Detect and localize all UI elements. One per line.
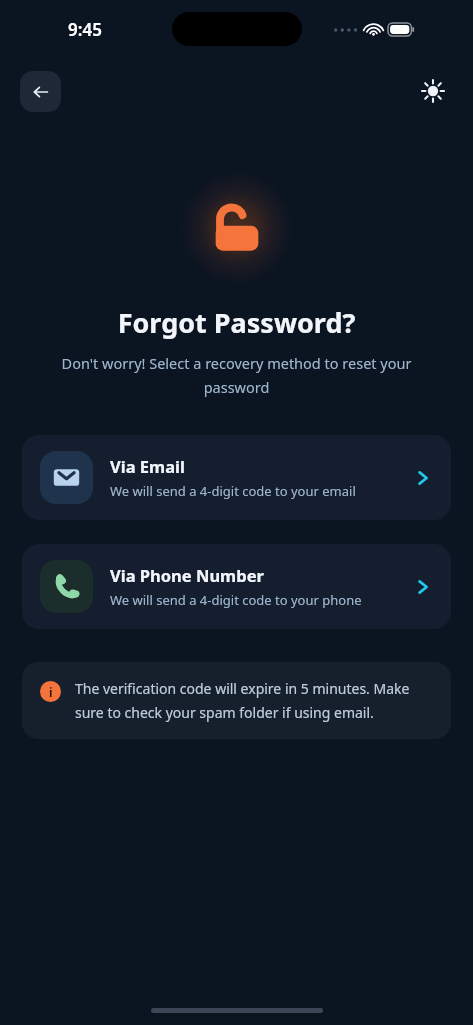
staticText: Via Phone Number — [110, 564, 264, 586]
staticText: The verification code will expire in 5 m… — [75, 679, 431, 722]
button[interactable]: Via Phone Number — [22, 544, 451, 629]
staticText: 9:45 — [68, 18, 102, 41]
button[interactable]: Back — [20, 71, 61, 112]
button[interactable]: Via Email — [22, 435, 451, 520]
staticText: We will send a 4-digit code to your phon… — [110, 591, 362, 609]
button[interactable]: Brightness — [413, 71, 453, 111]
staticText: i — [49, 684, 53, 700]
staticText: Via Email — [110, 455, 185, 477]
staticText: Don't worry! Select a recovery method to… — [38, 353, 435, 397]
button[interactable]: i — [22, 662, 451, 739]
staticText: Forgot Password? — [0, 304, 473, 341]
staticText: We will send a 4-digit code to your emai… — [110, 482, 356, 500]
